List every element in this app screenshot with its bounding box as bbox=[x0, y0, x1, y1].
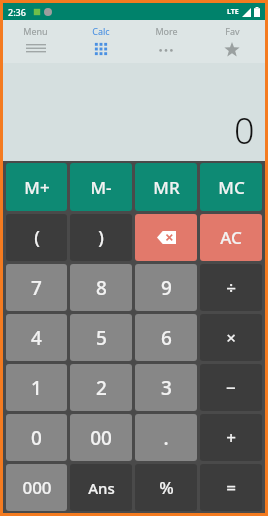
staticText: 7 bbox=[31, 275, 42, 301]
staticText: 8 bbox=[96, 275, 107, 301]
button[interactable]: M- bbox=[70, 163, 132, 211]
staticText: MR bbox=[153, 176, 180, 199]
button[interactable]: ÷ bbox=[200, 264, 262, 311]
staticText: % bbox=[159, 476, 174, 499]
staticText: MC bbox=[218, 176, 245, 199]
button[interactable]: × bbox=[200, 314, 262, 361]
button[interactable]: AC bbox=[200, 214, 262, 261]
staticText: M+ bbox=[24, 176, 50, 199]
button[interactable]: 00 bbox=[70, 414, 132, 461]
button[interactable]: 8 bbox=[70, 264, 132, 311]
staticText: 5 bbox=[96, 325, 107, 351]
button[interactable]: Ans bbox=[70, 464, 132, 511]
staticText: = bbox=[226, 476, 236, 499]
button[interactable]: MR bbox=[135, 163, 197, 211]
staticText: 4 bbox=[31, 325, 42, 351]
staticText: × bbox=[226, 326, 236, 349]
staticText: 3 bbox=[161, 375, 172, 401]
staticText: 00 bbox=[90, 425, 112, 451]
button[interactable]: 6 bbox=[135, 314, 197, 361]
button[interactable]: 0 bbox=[6, 414, 67, 461]
button[interactable]: 000 bbox=[6, 464, 67, 511]
staticText: Ans bbox=[88, 478, 115, 498]
staticText: Calc bbox=[92, 25, 110, 37]
button[interactable]: ) bbox=[70, 214, 132, 261]
staticText: − bbox=[226, 376, 236, 399]
staticText: ÷ bbox=[226, 276, 236, 299]
button[interactable]: 3 bbox=[135, 364, 197, 411]
staticText: LTE bbox=[227, 7, 239, 17]
staticText: 1 bbox=[31, 375, 42, 401]
button[interactable]: + bbox=[200, 414, 262, 461]
staticText: 000 bbox=[22, 476, 52, 499]
button[interactable]: Fav bbox=[199, 20, 265, 63]
button[interactable]: 7 bbox=[6, 264, 67, 311]
button[interactable]: Backspace bbox=[135, 214, 197, 261]
button[interactable]: ( bbox=[6, 214, 67, 261]
staticText: ) bbox=[98, 225, 104, 250]
button[interactable]: 2 bbox=[70, 364, 132, 411]
button[interactable]: Menu bbox=[3, 20, 68, 63]
button[interactable]: = bbox=[200, 464, 262, 511]
staticText: Menu bbox=[23, 25, 48, 37]
staticText: 2:36 bbox=[8, 6, 26, 18]
staticText: 6 bbox=[161, 325, 172, 351]
button[interactable]: 4 bbox=[6, 314, 67, 361]
button[interactable]: M+ bbox=[6, 163, 67, 211]
button[interactable]: Calc bbox=[68, 20, 133, 63]
button[interactable]: 1 bbox=[6, 364, 67, 411]
button[interactable]: MC bbox=[200, 163, 262, 211]
staticText: . bbox=[163, 425, 169, 451]
staticText: 0 bbox=[31, 425, 42, 451]
staticText: AC bbox=[220, 226, 242, 249]
staticText: 0 bbox=[234, 106, 255, 155]
staticText: Fav bbox=[225, 25, 240, 37]
staticText: + bbox=[226, 426, 236, 449]
staticText: ( bbox=[34, 225, 40, 250]
button[interactable]: % bbox=[135, 464, 197, 511]
button[interactable]: − bbox=[200, 364, 262, 411]
button[interactable]: 5 bbox=[70, 314, 132, 361]
button[interactable]: More bbox=[133, 20, 199, 63]
staticText: M- bbox=[90, 176, 112, 199]
staticText: More bbox=[155, 25, 178, 37]
button[interactable]: . bbox=[135, 414, 197, 461]
staticText: 2 bbox=[96, 375, 107, 401]
button[interactable]: 9 bbox=[135, 264, 197, 311]
staticText: 9 bbox=[161, 275, 172, 301]
